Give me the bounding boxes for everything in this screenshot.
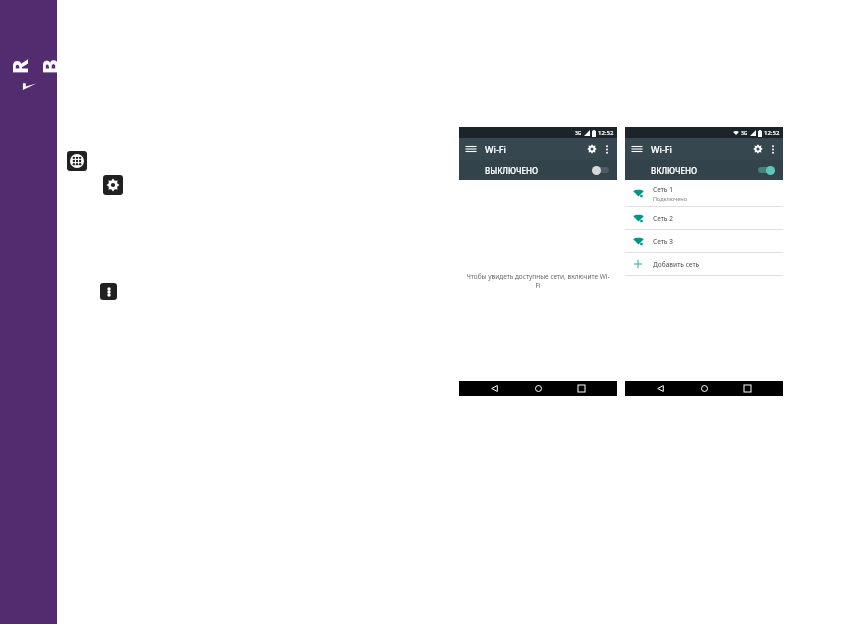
staticText: Чтобы увидеть доступные сети, включите W… (465, 272, 611, 290)
button[interactable]: More options (766, 142, 780, 156)
staticText: 12:52 (598, 129, 614, 137)
staticText: Добавить сеть (653, 260, 700, 269)
button[interactable]: ВКЛЮЧЕНО (625, 160, 783, 180)
button[interactable]: Добавить сеть (625, 253, 783, 275)
staticText: IRBIS (0, 56, 84, 74)
button[interactable]: Сеть 2 (625, 207, 783, 229)
staticText: ВКЛЮЧЕНО (651, 165, 698, 176)
button[interactable]: Сеть 1 (625, 180, 783, 206)
button[interactable]: Сеть 3 (625, 230, 783, 252)
button[interactable]: Home (531, 381, 546, 396)
button[interactable]: Settings (103, 175, 123, 195)
button[interactable]: More options (600, 142, 614, 156)
button[interactable]: Apps (67, 151, 87, 171)
staticText: ВЫКЛЮЧЕНО (485, 165, 539, 176)
button[interactable]: Recent apps (740, 381, 755, 396)
staticText: Сеть 2 (653, 214, 673, 223)
button[interactable]: More options (100, 283, 117, 300)
button[interactable]: Advanced settings (750, 141, 766, 157)
button[interactable]: Back (653, 381, 668, 396)
staticText: Wi-Fi (485, 143, 506, 155)
button[interactable]: Recent apps (574, 381, 589, 396)
staticText: 3G (575, 130, 582, 137)
staticText: 3G (741, 130, 748, 137)
staticText: Сеть 1 (653, 185, 673, 194)
button[interactable]: Navigation menu (464, 142, 478, 156)
button[interactable]: Home (697, 381, 712, 396)
staticText: Wi-Fi (651, 143, 672, 155)
staticText: 12:52 (764, 129, 780, 137)
button[interactable]: Back (487, 381, 502, 396)
button[interactable]: Advanced settings (584, 141, 600, 157)
staticText: Подключено (653, 195, 687, 202)
staticText: Сеть 3 (653, 237, 673, 246)
button[interactable]: ВЫКЛЮЧЕНО (459, 160, 617, 180)
button[interactable]: Navigation menu (630, 142, 644, 156)
